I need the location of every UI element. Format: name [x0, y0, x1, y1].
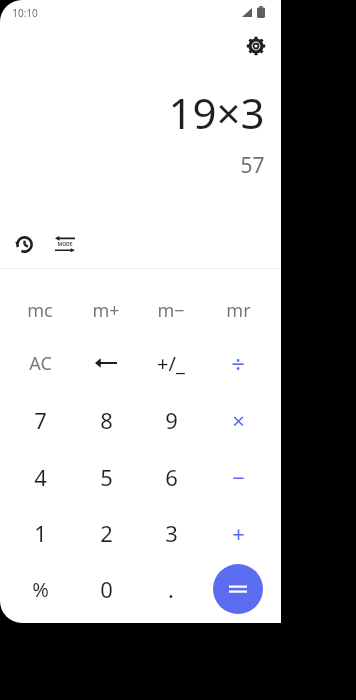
- staticText: +: [232, 518, 245, 548]
- staticText: 5: [100, 462, 113, 492]
- button[interactable]: Mode: [49, 228, 81, 260]
- button[interactable]: Equals: [213, 564, 263, 614]
- staticText: .: [168, 574, 174, 604]
- button[interactable]: mr: [208, 284, 268, 336]
- staticText: MODE: [57, 241, 73, 248]
- button[interactable]: m+: [76, 284, 136, 336]
- staticText: mc: [27, 298, 53, 323]
- staticText: m+: [92, 298, 120, 323]
- staticText: 2: [100, 518, 113, 548]
- button[interactable]: %: [10, 563, 70, 615]
- button[interactable]: −: [208, 451, 268, 503]
- staticText: mr: [226, 298, 251, 323]
- staticText: ×: [232, 405, 245, 435]
- button[interactable]: History: [8, 228, 40, 260]
- staticText: ÷: [231, 347, 245, 380]
- staticText: 3: [165, 518, 178, 548]
- staticText: %: [32, 576, 49, 603]
- button[interactable]: 6: [141, 451, 201, 503]
- button[interactable]: +/_: [141, 337, 201, 389]
- staticText: 1: [34, 518, 47, 548]
- staticText: 57: [240, 151, 265, 180]
- button[interactable]: +: [208, 507, 268, 559]
- button[interactable]: 8: [76, 394, 136, 446]
- staticText: 10:10: [12, 6, 38, 20]
- button[interactable]: 3: [141, 507, 201, 559]
- button[interactable]: 5: [76, 451, 136, 503]
- button[interactable]: 4: [10, 451, 70, 503]
- button[interactable]: 2: [76, 507, 136, 559]
- staticText: +/_: [157, 350, 185, 377]
- button[interactable]: .: [141, 563, 201, 615]
- staticText: 0: [100, 574, 113, 604]
- button[interactable]: ×: [208, 394, 268, 446]
- staticText: 9: [165, 405, 178, 435]
- button[interactable]: 0: [76, 563, 136, 615]
- button[interactable]: 9: [141, 394, 201, 446]
- button[interactable]: m−: [141, 284, 201, 336]
- staticText: m−: [157, 298, 185, 323]
- staticText: 8: [100, 405, 113, 435]
- button[interactable]: 1: [10, 507, 70, 559]
- button[interactable]: Settings: [236, 26, 276, 66]
- staticText: 7: [34, 405, 47, 435]
- button[interactable]: AC: [10, 337, 70, 389]
- button[interactable]: ÷: [208, 337, 268, 389]
- staticText: 4: [34, 462, 47, 492]
- staticText: −: [232, 462, 245, 492]
- staticText: 6: [165, 462, 178, 492]
- button[interactable]: Backspace: [76, 337, 136, 389]
- staticText: 19×3: [168, 84, 265, 141]
- button[interactable]: mc: [10, 284, 70, 336]
- button[interactable]: 7: [10, 394, 70, 446]
- staticText: AC: [29, 351, 52, 376]
